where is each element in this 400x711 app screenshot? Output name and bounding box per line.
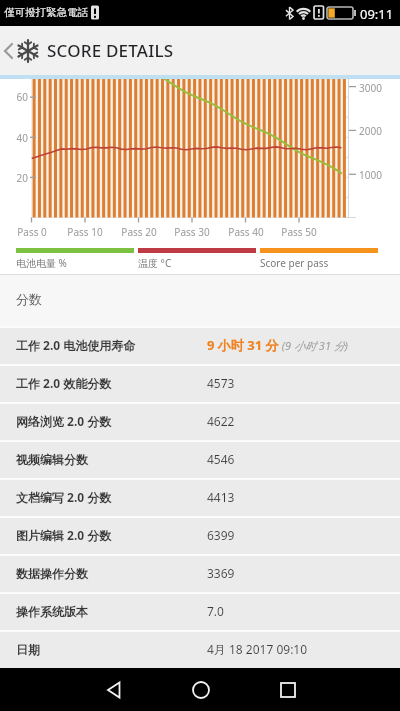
staticText: 4573 — [207, 375, 235, 391]
button[interactable]: 操作系统版本 — [0, 592, 400, 630]
staticText: Pass 30 — [167, 225, 217, 239]
staticText: 僅可撥打緊急電話 — [4, 6, 88, 19]
staticText: Pass 0 — [7, 225, 57, 239]
staticText: 4546 — [207, 451, 235, 467]
button[interactable]: 视频编辑分数 — [0, 440, 400, 478]
staticText: 60 — [6, 90, 28, 104]
staticText: Score per pass — [260, 256, 329, 270]
staticText: 1000 — [359, 168, 395, 182]
button[interactable]: SCORE DETAILS — [0, 26, 400, 75]
staticText: 4月 18 2017 09:10 — [207, 641, 308, 657]
staticText: 20 — [6, 171, 28, 185]
button[interactable]: 电池电量 % — [16, 248, 134, 270]
button[interactable]: 网络浏览 2.0 分数 — [0, 402, 400, 440]
staticText: 工作 2.0 效能分数 — [16, 375, 207, 391]
staticText: 2000 — [359, 124, 395, 138]
staticText: 工作 2.0 电池使用寿命 — [16, 337, 207, 353]
staticText: Pass 40 — [221, 225, 271, 239]
staticText: 6399 — [207, 527, 235, 543]
staticText: 温度 °C — [138, 256, 172, 270]
staticText: 电池电量 % — [16, 256, 67, 270]
staticText: SCORE DETAILS — [47, 39, 174, 62]
button[interactable]: 温度 °C — [138, 248, 256, 270]
staticText: 4413 — [207, 489, 235, 505]
staticText: Pass 10 — [60, 225, 110, 239]
staticText: 数据操作分数 — [16, 566, 207, 581]
staticText: 分数 — [16, 291, 42, 307]
staticText: 网络浏览 2.0 分数 — [16, 413, 207, 429]
staticText: 4622 — [207, 413, 235, 429]
button[interactable]: 文档编写 2.0 分数 — [0, 478, 400, 516]
button[interactable] — [157, 668, 244, 711]
staticText: 7.0 — [207, 603, 224, 619]
staticText: 40 — [6, 131, 28, 145]
staticText: 9 小时 31 分 — [207, 336, 279, 354]
staticText: (9 小时 31 分) — [279, 338, 349, 353]
staticText: 3369 — [207, 565, 235, 581]
button[interactable]: 工作 2.0 电池使用寿命 — [0, 326, 400, 364]
staticText: 文档编写 2.0 分数 — [16, 489, 207, 505]
staticText: 3000 — [359, 81, 395, 95]
staticText: Pass 20 — [114, 225, 164, 239]
button[interactable]: Score per pass — [260, 248, 378, 270]
staticText: 日期 — [16, 642, 207, 657]
button[interactable] — [244, 668, 331, 711]
button[interactable] — [70, 668, 157, 711]
button[interactable]: 图片编辑 2.0 分数 — [0, 516, 400, 554]
staticText: 图片编辑 2.0 分数 — [16, 527, 207, 543]
staticText: 视频编辑分数 — [16, 452, 207, 467]
button[interactable]: 工作 2.0 效能分数 — [0, 364, 400, 402]
staticText: Pass 50 — [274, 225, 324, 239]
staticText: 操作系统版本 — [16, 604, 207, 619]
button[interactable]: 日期 — [0, 630, 400, 668]
staticText: 09:11 — [360, 5, 394, 23]
button[interactable]: 数据操作分数 — [0, 554, 400, 592]
